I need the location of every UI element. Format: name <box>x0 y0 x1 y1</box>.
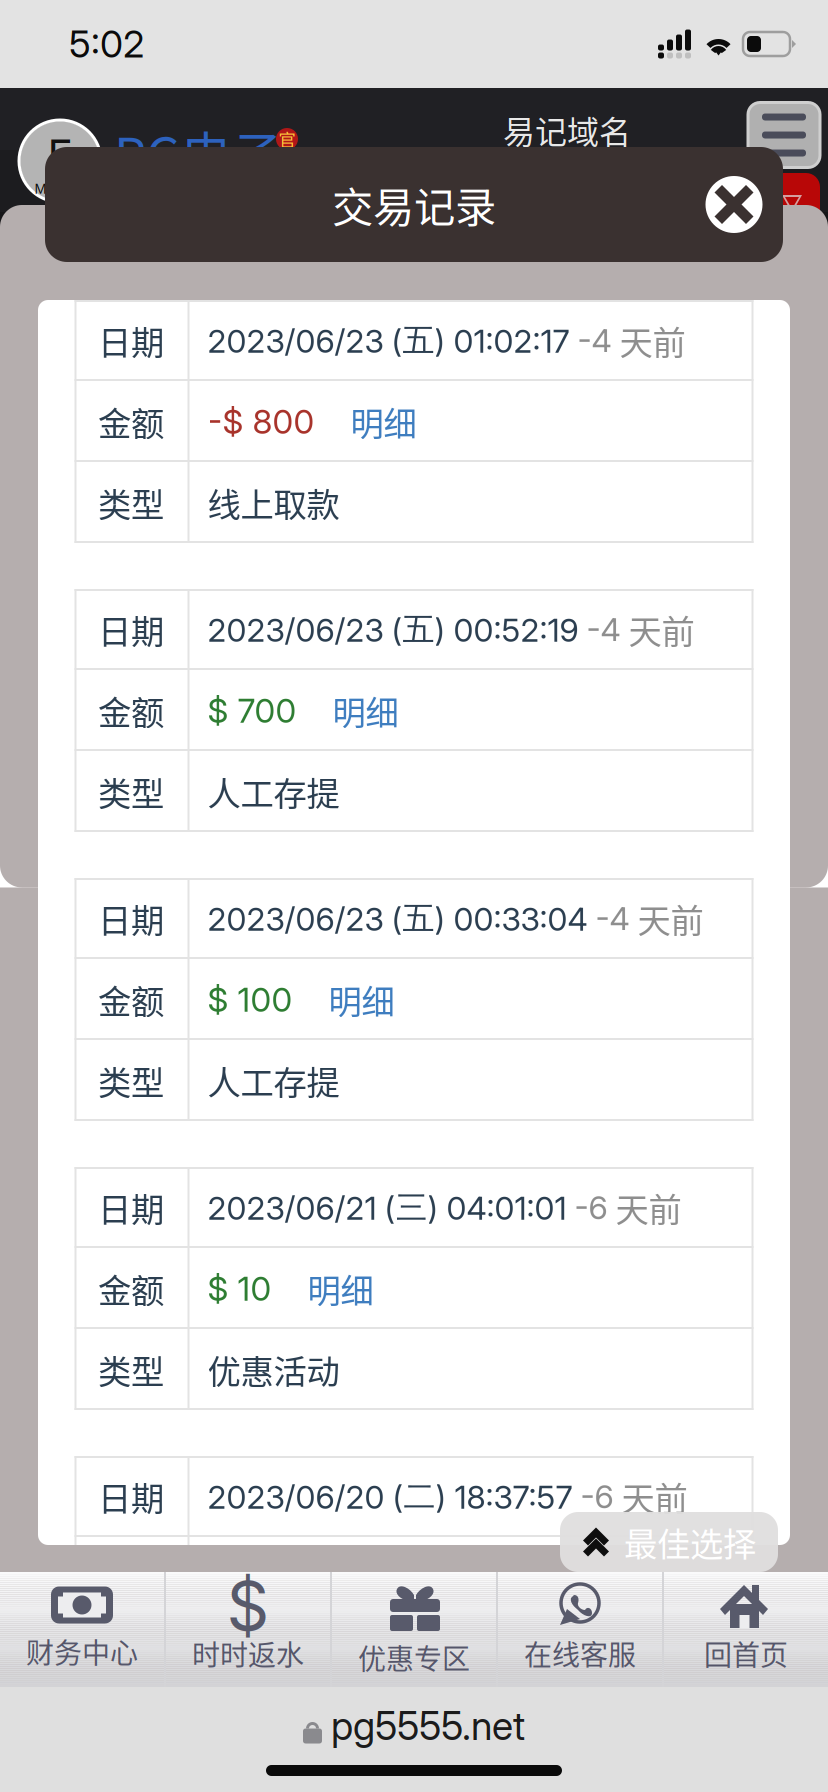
staticText: 优惠活动 <box>207 1345 339 1394</box>
staticText: 金额 <box>98 686 164 735</box>
staticText: 日期 <box>98 1183 164 1232</box>
staticText: 天前 <box>621 1472 687 1521</box>
staticText: 类型 <box>98 478 164 527</box>
button[interactable]: 在线客服 <box>498 1572 662 1687</box>
button[interactable]: Menu <box>742 96 826 174</box>
button[interactable]: 回首页 <box>664 1572 828 1687</box>
staticText: 回首页 <box>704 1633 788 1673</box>
staticText: $ 10 <box>207 1268 271 1309</box>
staticText: -4 <box>578 610 628 649</box>
staticText: 2023/06/23 (五) 00:52:19 <box>207 609 578 650</box>
staticText: 官 <box>278 126 295 152</box>
button[interactable]: 明细 <box>277 1537 391 1618</box>
staticText: -6 <box>566 1188 615 1227</box>
staticText: 明细 <box>328 975 394 1024</box>
staticText: 2023/06/23 (五) 00:33:04 <box>207 898 587 939</box>
staticText: 天前 <box>628 605 694 654</box>
staticText: 金额 <box>98 975 164 1024</box>
staticText: 人工存提 <box>207 1056 339 1105</box>
staticText: 在线客服 <box>524 1633 636 1673</box>
staticText: 金额 <box>98 1264 164 1313</box>
staticText: 日期 <box>98 316 164 365</box>
button[interactable]: Close <box>696 166 772 242</box>
button[interactable]: $ <box>166 1572 330 1687</box>
staticText: 日期 <box>98 605 164 654</box>
button[interactable]: 明细 <box>271 1248 385 1329</box>
staticText: F <box>47 129 72 181</box>
staticText: 类型 <box>98 1345 164 1394</box>
staticText: $ 100 <box>207 979 292 1020</box>
staticText: $ 700 <box>207 690 296 731</box>
button[interactable]: 最佳选择 <box>560 1512 778 1572</box>
staticText: 5:02 <box>69 21 144 67</box>
button[interactable]: 财务中心 <box>0 1572 164 1687</box>
staticText: 人工存提 <box>207 1634 339 1683</box>
staticText: 明细 <box>313 1553 379 1602</box>
staticText: 2023/06/21 (三) 04:01:01 <box>207 1187 566 1228</box>
staticText: 类型 <box>98 1634 164 1683</box>
staticText: 线上取款 <box>207 478 339 527</box>
button[interactable]: 明细 <box>314 381 428 462</box>
staticText: 2023/06/20 (二) 18:37:57 <box>207 1476 572 1517</box>
staticText: -$ 800 <box>207 401 314 442</box>
staticText: 易记域名 <box>503 107 631 153</box>
button[interactable]: 明细 <box>296 670 410 751</box>
staticText: 明细 <box>307 1264 373 1313</box>
staticText: 明细 <box>350 397 416 446</box>
staticText: 2023/06/23 (五) 01:02:17 <box>207 320 569 361</box>
staticText: -6 <box>572 1477 621 1516</box>
staticText: 天前 <box>637 894 703 943</box>
staticText: $ <box>226 1566 269 1646</box>
staticText: 金额 <box>98 1553 164 1602</box>
staticText: 类型 <box>98 1056 164 1105</box>
staticText: 明细 <box>332 686 398 735</box>
staticText: 日期 <box>98 894 164 943</box>
staticText: 财务中心 <box>26 1631 138 1671</box>
staticText: PG电子 <box>114 116 283 189</box>
staticText: -4 <box>569 321 619 360</box>
staticText: MOBILE <box>34 181 85 197</box>
button[interactable]: 优惠专区 <box>332 1572 496 1687</box>
staticText: 金额 <box>98 397 164 446</box>
staticText: 交易记录 <box>332 175 496 234</box>
button[interactable]: 明细 <box>292 959 406 1040</box>
staticText: pg5555.net <box>331 1703 525 1749</box>
staticText: -4 <box>587 899 637 938</box>
staticText: 最佳选择 <box>624 1518 756 1566</box>
staticText: 优惠专区 <box>358 1637 470 1677</box>
staticText: 天前 <box>615 1183 681 1232</box>
staticText: $ 50 <box>207 1557 277 1598</box>
staticText: 时时返水 <box>192 1633 304 1673</box>
staticText: 人工存提 <box>207 767 339 816</box>
staticText: 日期 <box>98 1472 164 1521</box>
staticText: 类型 <box>98 767 164 816</box>
staticText: 天前 <box>619 316 685 365</box>
